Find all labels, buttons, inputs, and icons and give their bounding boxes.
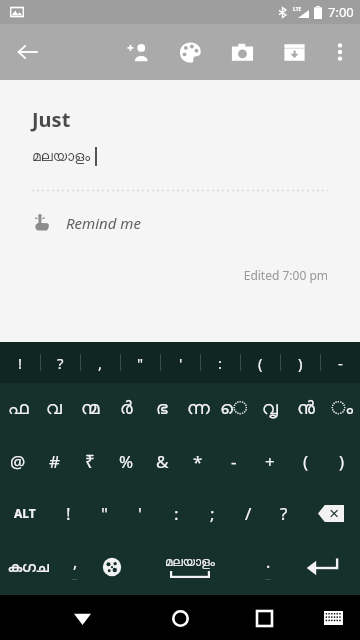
button[interactable]: !	[50, 487, 86, 539]
staticText: ...	[72, 573, 78, 583]
button[interactable]: Just	[32, 106, 71, 133]
button[interactable]: Switch keyboard	[316, 601, 350, 635]
button[interactable]: "	[86, 487, 122, 539]
staticText: ഭ	[156, 400, 168, 418]
button[interactable]: Back	[62, 598, 102, 638]
button[interactable]: Space	[130, 539, 249, 595]
staticText: /	[245, 502, 252, 525]
button[interactable]: -	[321, 342, 360, 383]
staticText: വ	[46, 400, 62, 418]
staticText: ₹	[85, 450, 95, 473]
staticText: (	[303, 450, 309, 473]
button[interactable]: Enter	[286, 539, 360, 595]
staticText: -	[231, 450, 237, 473]
button[interactable]: More options	[320, 28, 360, 76]
button[interactable]: മലയാളം	[32, 150, 91, 164]
staticText: (	[258, 353, 263, 373]
staticText: ഫ	[8, 400, 29, 418]
staticText: െ	[220, 400, 248, 418]
button[interactable]: %	[108, 435, 144, 487]
button[interactable]: Archive	[268, 28, 320, 76]
staticText: ,	[98, 353, 103, 373]
button[interactable]: !	[0, 342, 40, 383]
staticText: ?	[57, 353, 64, 373]
staticText: ;	[210, 502, 215, 525]
button[interactable]: &	[144, 435, 180, 487]
button[interactable]: Home	[160, 598, 200, 638]
button[interactable]: *	[180, 435, 216, 487]
button[interactable]: (	[288, 435, 324, 487]
staticText: *	[193, 450, 203, 473]
button[interactable]: (	[241, 342, 280, 383]
button[interactable]: ,	[56, 539, 93, 595]
staticText: "	[101, 502, 108, 525]
staticText: :	[174, 502, 179, 525]
staticText: !	[66, 502, 71, 525]
button[interactable]: :	[158, 487, 194, 539]
button[interactable]: ?	[266, 487, 302, 539]
staticText: )	[339, 450, 345, 473]
button[interactable]: /	[230, 487, 266, 539]
button[interactable]: .	[249, 539, 286, 595]
staticText: !	[18, 353, 23, 373]
button[interactable]: െ	[216, 383, 252, 435]
staticText: കഗച	[8, 560, 49, 575]
button[interactable]: ഫ	[0, 383, 36, 435]
button[interactable]: Add image	[216, 28, 268, 76]
button[interactable]: +	[252, 435, 288, 487]
staticText: ൻ	[297, 400, 315, 418]
staticText: Remind me	[66, 213, 141, 233]
staticText: )	[298, 353, 303, 373]
button[interactable]: കഗച	[0, 539, 56, 595]
staticText: ന്മ	[81, 400, 100, 418]
button[interactable]: ൻ	[288, 383, 324, 435]
button[interactable]: ;	[194, 487, 230, 539]
staticText: :	[218, 353, 223, 373]
staticText: 7:00	[328, 3, 354, 21]
button[interactable]: ന്മ	[72, 383, 108, 435]
staticText: '	[179, 353, 183, 373]
button[interactable]: ം	[324, 383, 360, 435]
button[interactable]: ന്ന	[180, 383, 216, 435]
staticText: @	[10, 450, 26, 473]
staticText: വൃ	[262, 400, 278, 418]
button[interactable]: Add collaborator	[112, 28, 164, 76]
staticText: +	[265, 450, 275, 473]
button[interactable]: )	[324, 435, 360, 487]
button[interactable]: Change color	[164, 28, 216, 76]
button[interactable]: Change keyboard language	[93, 539, 130, 595]
button[interactable]: ALT	[0, 487, 50, 539]
button[interactable]: )	[281, 342, 320, 383]
button[interactable]: ?	[41, 342, 80, 383]
staticText: ന്ന	[187, 400, 210, 418]
button[interactable]: വൃ	[252, 383, 288, 435]
button[interactable]: '	[161, 342, 200, 383]
staticText: &	[156, 450, 169, 473]
staticText: .	[266, 551, 271, 573]
button[interactable]: Backspace	[302, 487, 360, 539]
button[interactable]: ഭ	[144, 383, 180, 435]
button[interactable]: ,	[81, 342, 120, 383]
button[interactable]: #	[36, 435, 72, 487]
button[interactable]: Back	[4, 28, 52, 76]
button[interactable]: "	[121, 342, 160, 383]
button[interactable]: ർ	[108, 383, 144, 435]
button[interactable]: '	[122, 487, 158, 539]
button[interactable]: വ	[36, 383, 72, 435]
button[interactable]: Recent apps	[244, 598, 284, 638]
button[interactable]: Remind me	[32, 209, 141, 237]
staticText: ,	[73, 551, 78, 573]
staticText: #	[49, 450, 60, 473]
staticText: %	[119, 450, 134, 473]
staticText: ?	[280, 502, 288, 525]
button[interactable]: -	[216, 435, 252, 487]
button[interactable]: ₹	[72, 435, 108, 487]
staticText: LTE	[293, 6, 302, 13]
staticText: ...	[265, 573, 271, 583]
staticText: '	[138, 502, 142, 525]
staticText: "	[137, 353, 144, 373]
button[interactable]: :	[201, 342, 240, 383]
button[interactable]: @	[0, 435, 36, 487]
staticText: -	[338, 353, 343, 373]
staticText: ALT	[14, 505, 36, 521]
